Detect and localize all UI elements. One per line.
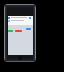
button[interactable]: Accept (8, 30, 13, 32)
button[interactable]: Home (18, 56, 22, 60)
button[interactable]: Action (26, 28, 31, 30)
button[interactable]: Decline (15, 30, 22, 32)
button[interactable] (8, 16, 33, 25)
button[interactable]: Menu (8, 17, 10, 19)
